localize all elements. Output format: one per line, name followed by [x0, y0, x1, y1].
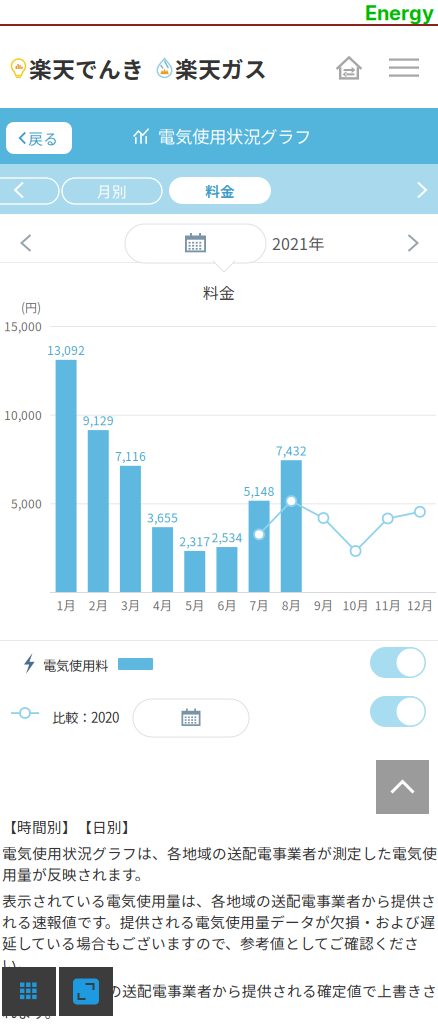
staticText: 2,317: [179, 532, 210, 550]
staticText: 10月: [343, 596, 369, 614]
staticText: 戻る: [28, 127, 58, 149]
staticText: 確定後、各地域の送配電事業者から提供される確定値で上書きされます。: [2, 980, 437, 1022]
staticText: 7,116: [115, 447, 146, 464]
staticText: 楽天ガス: [175, 52, 267, 84]
button[interactable]: Resize: [59, 967, 113, 1016]
staticText: 15,000: [4, 317, 42, 335]
staticText: 料金: [205, 180, 235, 201]
staticText: 楽天でんき: [29, 52, 144, 84]
staticText: 3,655: [147, 508, 178, 526]
staticText: 電気使用料: [43, 655, 108, 675]
button[interactable]: Toggle usage series: [370, 647, 426, 678]
button[interactable]: Keyboard: [2, 967, 56, 1016]
button[interactable]: Pick date: [125, 224, 266, 263]
staticText: 料金: [203, 280, 235, 304]
button[interactable]: Next year: [395, 225, 431, 261]
button[interactable]: Next view: [407, 175, 437, 205]
staticText: Energy: [365, 1, 434, 25]
staticText: 5月: [185, 596, 204, 614]
staticText: 13,092: [47, 341, 85, 358]
button[interactable]: 月別: [62, 178, 162, 204]
staticText: 【時間別】【日別】: [2, 816, 137, 837]
staticText: 5,148: [244, 482, 275, 499]
button[interactable]: Pick comparison year: [133, 699, 249, 737]
staticText: 表示されている電気使用量は、各地域の送配電事業者から提供される速報値です。提供さ…: [2, 890, 436, 975]
staticText: 11月: [375, 596, 401, 614]
staticText: 10,000: [4, 406, 42, 423]
button[interactable]: Menu: [382, 46, 426, 90]
button[interactable]: Previous year: [8, 225, 44, 261]
button[interactable]: 戻る: [6, 122, 72, 154]
staticText: 月別: [97, 180, 127, 202]
button[interactable]: 料金: [169, 177, 271, 204]
staticText: 3月: [121, 596, 140, 614]
staticText: 2021年: [272, 231, 324, 255]
staticText: (円): [21, 298, 41, 316]
staticText: 電気使用状況グラフは、各地域の送配電事業者が測定した電気使用量が反映されます。: [2, 842, 437, 885]
staticText: 9月: [314, 596, 333, 614]
button[interactable]: Previous view: [4, 175, 34, 205]
staticText: 2,534: [211, 528, 242, 546]
staticText: 5,000: [11, 495, 42, 512]
staticText: 1月: [57, 596, 76, 614]
staticText: 9,129: [83, 411, 114, 429]
staticText: 7,432: [276, 441, 307, 459]
staticText: 2月: [89, 596, 108, 614]
staticText: 8月: [282, 596, 301, 614]
staticText: 4月: [153, 596, 172, 614]
staticText: 7月: [250, 596, 269, 614]
button[interactable]: Switch service: [327, 46, 371, 90]
staticText: 比較：2020: [52, 707, 119, 727]
staticText: 12月: [407, 596, 433, 614]
staticText: 6月: [217, 596, 236, 614]
staticText: 電気使用状況グラフ: [158, 123, 311, 149]
button[interactable]: Scroll to top: [376, 760, 429, 814]
button[interactable]: Toggle comparison series: [370, 696, 426, 727]
